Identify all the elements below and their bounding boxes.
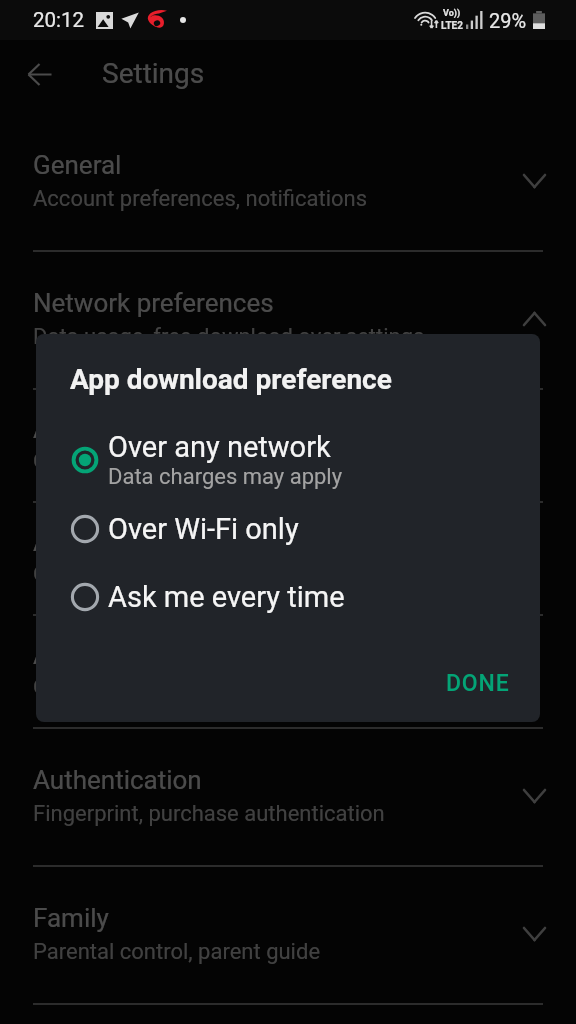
staticText: Account preferences, notifications — [33, 186, 368, 212]
staticText: DONE — [446, 670, 510, 697]
staticText: Over any network — [33, 449, 195, 474]
button[interactable]: App download preference — [0, 390, 576, 503]
staticText: General — [33, 150, 122, 180]
staticText: 20:12 — [33, 8, 85, 32]
button[interactable]: Over any network — [36, 426, 540, 494]
button[interactable]: Family — [0, 867, 576, 1005]
button[interactable]: Over Wi-Fi only — [36, 495, 540, 562]
staticText: Auto-update apps — [33, 529, 222, 557]
staticText: Auto-play videos — [33, 642, 209, 670]
button[interactable]: DONE — [428, 658, 528, 709]
button[interactable]: Auto-play videos — [0, 616, 576, 729]
button[interactable]: Back — [16, 50, 64, 98]
staticText: App download preference — [70, 363, 392, 396]
button[interactable]: Ask me every time — [36, 563, 540, 630]
staticText: Fingerprint, purchase authentication — [33, 801, 385, 827]
staticText: Over any network — [108, 430, 331, 464]
staticText: Authentication — [33, 765, 202, 795]
button[interactable]: Network preferences — [0, 252, 576, 390]
button[interactable]: Auto-update apps — [0, 503, 576, 616]
staticText: 29% — [489, 9, 527, 32]
staticText: Network preferences — [33, 288, 274, 318]
staticText: Vo)) — [443, 8, 461, 19]
staticText: Over Wi-Fi only — [108, 512, 299, 546]
staticText: Over any network — [33, 562, 195, 587]
staticText: Data charges may apply — [108, 464, 343, 490]
staticText: Parental control, parent guide — [33, 939, 321, 965]
button[interactable]: General — [0, 114, 576, 252]
staticText: Data usage, free download over settings — [33, 324, 425, 350]
staticText: Settings — [102, 57, 205, 90]
staticText: LTE2 — [441, 20, 463, 32]
staticText: App download preference — [33, 416, 307, 444]
button[interactable]: Authentication — [0, 729, 576, 867]
staticText: Over any network — [33, 675, 195, 700]
staticText: Ask me every time — [108, 580, 345, 614]
staticText: Family — [33, 903, 109, 933]
